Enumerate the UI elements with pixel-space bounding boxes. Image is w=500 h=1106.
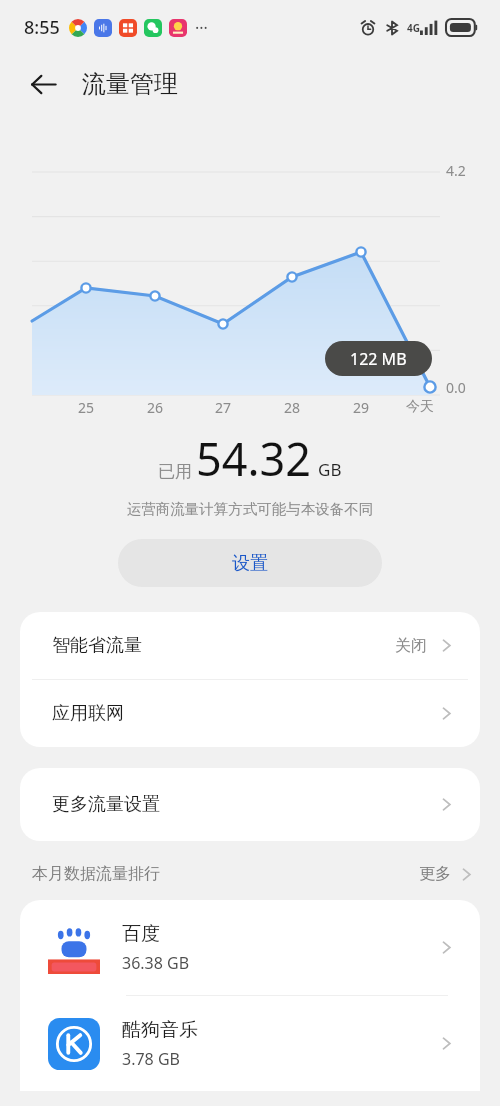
staticText: 36.38 GB [122, 952, 190, 974]
staticText: 智能省流量 [52, 634, 142, 657]
staticText: 本月数据流量排行 [32, 864, 160, 884]
staticText: 已用 [158, 461, 192, 482]
button[interactable]: 更多 [419, 864, 476, 884]
button[interactable]: 应用联网 [20, 680, 480, 747]
staticText: 更多 [419, 864, 451, 884]
button[interactable]: 百度 [20, 900, 480, 995]
button[interactable]: 智能省流量 [20, 612, 480, 679]
staticText: GB [318, 458, 342, 481]
staticText: 4.2 [446, 161, 466, 180]
staticText: 3.78 GB [122, 1048, 180, 1070]
staticText: 酷狗音乐 [122, 1018, 198, 1042]
button[interactable]: 设置 [118, 539, 382, 587]
staticText: 运营商流量计算方式可能与本设备不同 [0, 500, 500, 518]
button[interactable]: 更多流量设置 [20, 768, 480, 841]
button[interactable]: Back [20, 61, 66, 107]
staticText: 27 [203, 398, 243, 417]
staticText: 流量管理 [82, 69, 178, 99]
staticText: 54.32 [196, 428, 312, 489]
staticText: 4G [407, 21, 420, 35]
staticText: 8:55 [24, 15, 60, 40]
staticText: 关闭 [395, 636, 427, 656]
staticText: 更多流量设置 [52, 793, 160, 816]
staticText: 应用联网 [52, 702, 124, 725]
staticText: 0.0 [446, 378, 466, 397]
staticText: 25 [66, 398, 106, 417]
staticText: 设置 [232, 552, 268, 575]
staticText: ··· [195, 17, 208, 39]
staticText: 26 [135, 398, 175, 417]
button[interactable]: 酷狗音乐 [20, 996, 480, 1091]
staticText: 百度 [122, 922, 160, 946]
staticText: 29 [341, 398, 381, 417]
staticText: 今天 [400, 398, 440, 416]
staticText: 122 MB [350, 348, 407, 370]
staticText: 28 [272, 398, 312, 417]
